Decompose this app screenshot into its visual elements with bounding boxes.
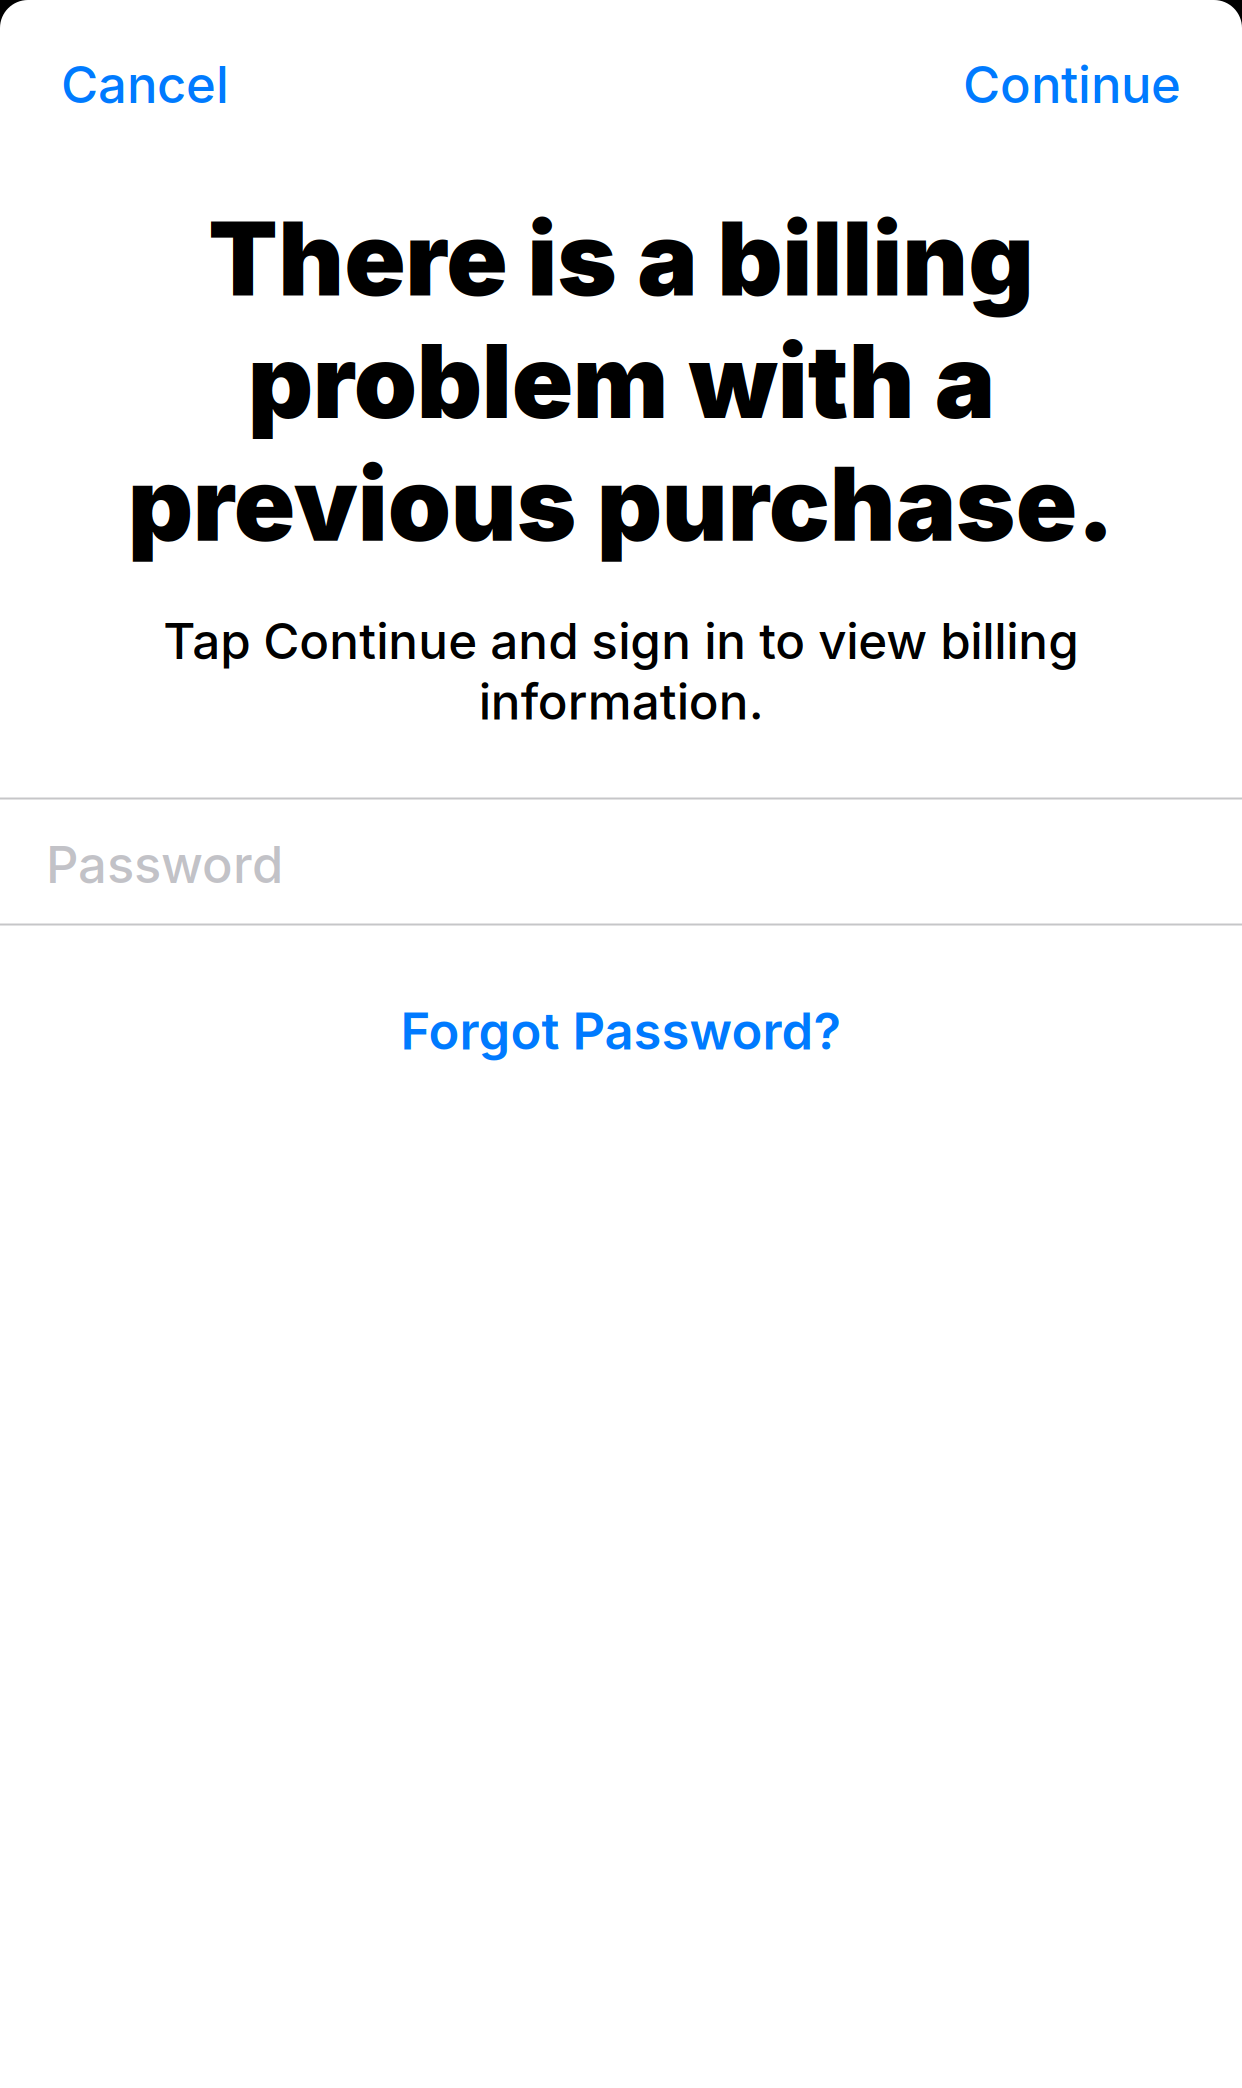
button[interactable]: Cancel	[0, 38, 273, 131]
staticText: Continue	[963, 54, 1181, 115]
button[interactable]: Continue	[919, 38, 1242, 131]
staticText: Tap Continue and sign in to view billing…	[163, 611, 1079, 731]
staticText: Cancel	[61, 54, 229, 115]
button[interactable]: Password	[0, 797, 1242, 925]
staticText: Forgot Password?	[400, 1000, 841, 1062]
button[interactable]: Forgot Password?	[340, 978, 901, 1084]
staticText: Password	[46, 834, 283, 895]
staticText: There is a billing problem with a previo…	[127, 197, 1114, 565]
